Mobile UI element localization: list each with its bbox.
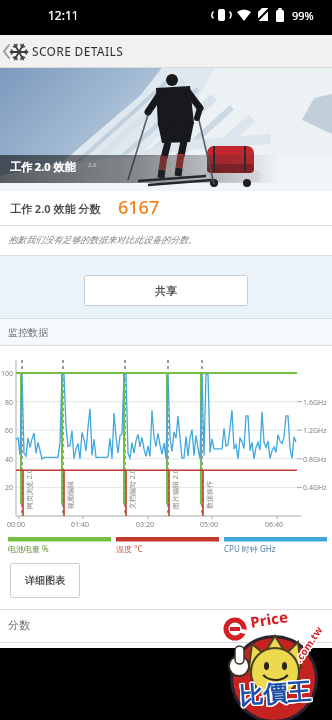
staticText: 比價王 <box>238 676 312 711</box>
staticText: 比價王 <box>239 676 313 711</box>
staticText: Price <box>248 607 288 633</box>
staticText: .com.tw <box>291 622 326 664</box>
staticText: 80 <box>0 398 13 408</box>
staticText: 1.2GHz <box>303 426 327 436</box>
staticText: Price <box>250 606 290 632</box>
staticText: SCORE DETAILS <box>32 43 124 59</box>
staticText: 100 <box>0 369 13 379</box>
staticText: 99% <box>292 8 314 23</box>
staticText: .com.tw <box>290 624 325 666</box>
staticText: 工作 2.0 效能 <box>10 159 76 174</box>
staticText: 03:20 <box>136 520 154 530</box>
staticText: 20 <box>0 483 13 493</box>
staticText: 工作 2.0 效能 分数 <box>10 201 101 216</box>
staticText: 比價王 <box>239 677 313 712</box>
staticText: 05:00 <box>200 520 218 530</box>
staticText: 0.4GHz <box>303 483 327 493</box>
staticText: 比價王 <box>237 676 311 711</box>
staticText: .com.tw <box>292 623 327 665</box>
staticText: 比價王 <box>238 675 312 710</box>
staticText: 文档编写 2.0 <box>128 459 138 509</box>
button[interactable]: SCORE DETAILS <box>0 35 332 68</box>
staticText: .com.tw <box>292 624 327 666</box>
staticText: Price <box>249 605 289 631</box>
staticText: 01:40 <box>71 520 89 530</box>
staticText: 温度 °C <box>116 543 143 554</box>
staticText: .com.tw <box>291 623 326 665</box>
staticText: 60 <box>0 426 13 436</box>
staticText: 图片编辑 2.0 <box>171 459 181 509</box>
staticText: 比價王 <box>237 675 311 710</box>
staticText: Price <box>250 607 290 633</box>
staticText: .com.tw <box>291 624 326 666</box>
staticText: 0.8GHz <box>303 455 327 465</box>
staticText: 视频编辑 <box>66 459 76 509</box>
staticText: 比價王 <box>239 675 313 710</box>
staticText: 40 <box>0 455 13 465</box>
staticText: Price <box>249 606 289 632</box>
staticText: 2.0 <box>88 161 97 169</box>
staticText: CPU 时钟 GHz <box>224 543 276 554</box>
staticText: 分数 <box>8 618 30 632</box>
staticText: 6167 <box>118 195 160 220</box>
staticText: 12:11 <box>48 7 79 23</box>
staticText: 1.6GHz <box>303 398 327 408</box>
staticText: 数据操作 <box>205 459 215 509</box>
staticText: .com.tw <box>290 623 325 665</box>
staticText: .com.tw <box>290 622 325 664</box>
staticText: 监控数据 <box>8 326 48 339</box>
staticText: Price <box>248 605 288 631</box>
staticText: 00:00 <box>7 520 25 530</box>
staticText: Price <box>249 607 289 633</box>
staticText: 抱歉我们没有足够的数据来对比此设备的分数。 <box>8 234 197 245</box>
staticText: 比價王 <box>238 677 312 712</box>
staticText: 电池电量 % <box>8 543 49 554</box>
staticText: Price <box>250 605 290 631</box>
button[interactable]: 共享 <box>84 275 248 306</box>
staticText: 详细图表 <box>25 574 65 587</box>
staticText: 06:40 <box>265 520 283 530</box>
staticText: Price <box>248 606 288 632</box>
staticText: .com.tw <box>292 622 327 664</box>
staticText: 共享 <box>155 284 177 298</box>
staticText: 网页浏览 2.0 <box>25 459 35 509</box>
staticText: 比價王 <box>237 677 311 712</box>
button[interactable]: 详细图表 <box>10 563 80 598</box>
